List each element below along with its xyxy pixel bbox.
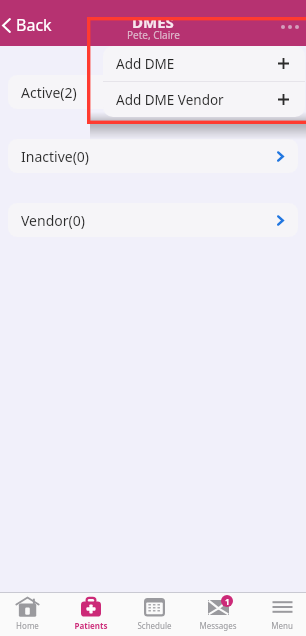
staticText: Pete, Claire — [127, 28, 180, 42]
staticText: Back — [16, 14, 52, 36]
staticText: 1 — [225, 596, 230, 607]
staticText: Patients — [74, 620, 108, 631]
button[interactable]: Add DME — [103, 46, 305, 81]
button[interactable]: Schedule — [122, 593, 186, 636]
button[interactable]: Menu — [250, 593, 306, 636]
button[interactable]: Add DME Vendor — [103, 82, 305, 117]
staticText: Schedule — [137, 620, 172, 631]
button[interactable]: Active(2) — [8, 75, 298, 109]
staticText: Active(2) — [21, 83, 77, 102]
staticText: Home — [16, 620, 39, 631]
staticText: Inactive(0) — [21, 147, 90, 166]
button[interactable]: Inactive(0) — [8, 139, 298, 173]
button[interactable]: Patients — [59, 593, 122, 636]
staticText: Add DME Vendor — [116, 91, 224, 109]
staticText: DMES — [132, 12, 174, 32]
button[interactable]: Vendor(0) — [8, 203, 298, 237]
staticText: Add DME — [116, 55, 175, 73]
staticText: Menu — [271, 620, 293, 631]
button[interactable]: More options — [271, 17, 306, 37]
staticText: Messages — [199, 620, 237, 631]
staticText: Vendor(0) — [21, 211, 85, 230]
button[interactable]: Back — [0, 8, 60, 42]
button[interactable]: Home — [0, 593, 59, 636]
button[interactable]: 1 — [186, 593, 250, 636]
